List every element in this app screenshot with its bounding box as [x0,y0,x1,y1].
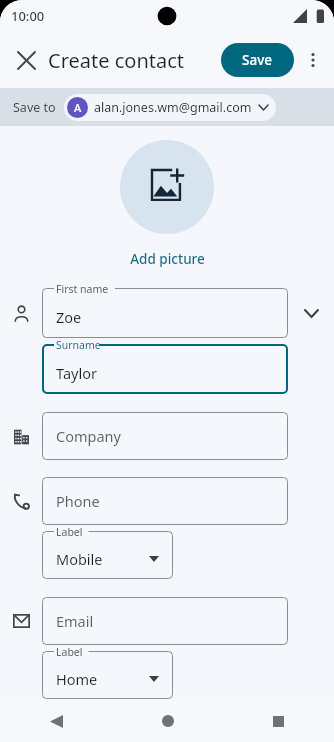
button[interactable]: Add picture [120,140,214,234]
button[interactable]: A [64,94,276,121]
staticText: Taylor [56,363,97,383]
button[interactable]: Label [42,531,173,579]
button[interactable]: Phone [42,477,288,525]
button[interactable]: Company [42,412,288,460]
staticText: Label [56,645,83,659]
staticText: Label [56,525,83,539]
button[interactable]: First name [42,288,288,338]
staticText: A [74,100,82,115]
button[interactable]: Home [112,700,223,742]
staticText: Create contact [48,47,185,74]
staticText: Surname [56,338,101,352]
staticText: Save [242,51,273,69]
button[interactable]: Label [42,651,173,699]
staticText: Add picture [130,250,205,268]
button[interactable]: Recent apps [223,700,334,742]
staticText: 10:00 [11,7,45,25]
staticText: First name [56,282,109,296]
button[interactable]: Add picture [124,248,211,270]
button[interactable]: Surname [42,344,288,394]
button[interactable]: Back [0,700,112,742]
staticText: Zoe [56,307,82,327]
button[interactable]: Save [221,43,294,77]
staticText: Phone [56,491,100,511]
staticText: Email [56,611,94,631]
button[interactable]: Expand name fields [288,288,334,338]
staticText: Save to [13,99,56,116]
staticText: Home [56,669,98,689]
button[interactable]: Email [42,597,288,645]
staticText: alan.jones.wm@gmail.com [94,99,252,116]
button[interactable]: More options [294,41,332,79]
staticText: Company [56,426,121,446]
button[interactable]: Close [6,40,46,80]
staticText: Mobile [56,549,103,569]
